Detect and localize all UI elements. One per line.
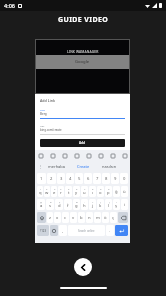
button[interactable]: Backspace [118, 212, 128, 223]
button[interactable]: Emoji [50, 225, 58, 236]
button[interactable]: Clipboard [38, 153, 43, 158]
button[interactable]: 1 [37, 186, 43, 197]
button[interactable]: 7 [81, 186, 88, 197]
staticText: g [75, 203, 78, 209]
button[interactable]: @ [37, 199, 45, 210]
button[interactable]: z [47, 212, 53, 223]
button[interactable]: - [81, 199, 88, 210]
staticText: ?123 [40, 229, 47, 233]
button[interactable]: ?123 [37, 225, 49, 236]
staticText: 8 [92, 187, 94, 190]
button[interactable]: 9 [111, 173, 119, 184]
button[interactable]: 4 [66, 173, 74, 184]
staticText: 7 [96, 176, 99, 182]
button[interactable]: 3 [51, 186, 57, 197]
button[interactable]: m [94, 212, 101, 223]
staticText: / [116, 200, 117, 203]
staticText: ı [92, 190, 94, 196]
button[interactable]: Settings [110, 153, 115, 158]
button[interactable]: Add [40, 139, 125, 147]
button[interactable]: ğ [113, 186, 120, 197]
staticText: 6 [76, 187, 78, 190]
button[interactable]: 6 [84, 173, 92, 184]
button[interactable]: 1 [37, 173, 46, 184]
staticText: ö [104, 215, 107, 221]
button[interactable]: Sticker [50, 153, 55, 158]
staticText: 8 [105, 176, 108, 182]
staticText: 1 [40, 176, 43, 182]
staticText: t [68, 190, 70, 196]
staticText: Berg [40, 112, 47, 116]
staticText: q [39, 190, 42, 196]
staticText: u [83, 190, 86, 196]
staticText: x [56, 215, 59, 221]
button[interactable]: $ [55, 199, 63, 210]
button[interactable]: # [46, 199, 54, 210]
button[interactable]: 8 [89, 186, 96, 197]
button[interactable]: 7 [93, 173, 101, 184]
button[interactable]: / [113, 199, 120, 210]
button[interactable]: 2 [44, 186, 50, 197]
staticText: n [88, 215, 91, 221]
staticText: merhaba [48, 164, 66, 169]
button[interactable]: merhaba [44, 160, 70, 172]
button[interactable]: Back [74, 258, 92, 276]
button[interactable]: + [89, 199, 96, 210]
staticText: w [45, 190, 49, 196]
staticText: 1 [40, 187, 42, 190]
button[interactable]: i [121, 199, 128, 210]
button[interactable]: 2 [47, 173, 56, 184]
button[interactable]: Translate [74, 153, 79, 158]
staticText: 2 [50, 176, 53, 182]
staticText: Title [40, 108, 45, 111]
staticText: 0 [108, 187, 110, 190]
button[interactable]: ö [102, 212, 109, 223]
button[interactable]: b [78, 212, 85, 223]
button[interactable]: ) [105, 199, 112, 210]
button[interactable]: 0 [120, 173, 128, 184]
button[interactable]: Space [68, 225, 105, 236]
button[interactable]: 6 [73, 186, 80, 197]
button[interactable]: 4 [58, 186, 64, 197]
staticText: 5 [68, 187, 70, 190]
button[interactable]: v [70, 212, 77, 223]
button[interactable]: _ [64, 199, 72, 210]
staticText: 4:06 [4, 2, 15, 9]
button[interactable]: & [73, 199, 80, 210]
button[interactable]: 5 [65, 186, 72, 197]
staticText: ( [100, 200, 101, 203]
staticText: Add [79, 141, 86, 145]
button[interactable]: nasılsın [96, 160, 122, 172]
button[interactable]: x [54, 212, 61, 223]
button[interactable]: 8 [102, 173, 110, 184]
button[interactable]: Enter [115, 225, 128, 236]
staticText: Search online [78, 229, 95, 233]
button[interactable]: Theme [62, 153, 67, 158]
button[interactable]: n [86, 212, 93, 223]
button[interactable]: c [62, 212, 69, 223]
button[interactable]: 5 [75, 173, 83, 184]
staticText: - [84, 200, 85, 203]
staticText: LINK WAMANAGER [67, 49, 99, 54]
button[interactable]: 0 [105, 186, 112, 197]
button[interactable]: , [59, 225, 67, 236]
staticText: ş [115, 203, 118, 209]
button[interactable]: ( [97, 199, 104, 210]
staticText: ç [112, 215, 115, 221]
button[interactable]: GIF [86, 153, 91, 158]
button[interactable]: 9 [97, 186, 104, 197]
staticText: v [72, 215, 75, 221]
staticText: + [92, 200, 94, 203]
button[interactable]: ç [110, 212, 117, 223]
button[interactable]: 3 [57, 173, 65, 184]
button[interactable]: More [122, 153, 127, 158]
button[interactable]: Create [70, 160, 96, 172]
button[interactable]: Voice [98, 153, 103, 158]
button[interactable]: . [106, 225, 114, 236]
button[interactable]: ü [121, 186, 128, 197]
staticText: 0 [123, 176, 126, 182]
button[interactable]: Shift [37, 212, 46, 223]
staticText: s [49, 203, 52, 209]
staticText: f [67, 203, 69, 209]
staticText: e [53, 190, 56, 196]
